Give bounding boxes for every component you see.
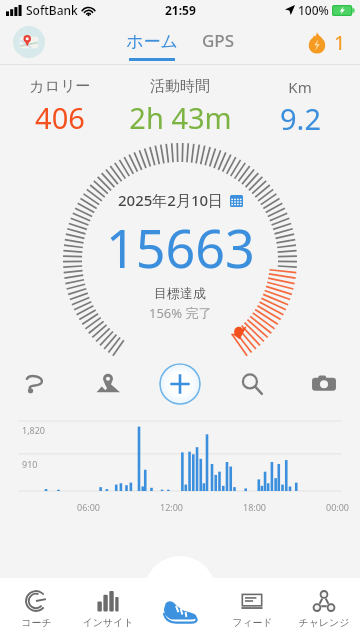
staticText: カロリー <box>29 77 91 96</box>
button[interactable]: インサイト <box>72 578 144 640</box>
staticText: フィード <box>232 616 273 629</box>
staticText: 910 <box>22 458 38 470</box>
staticText: 2h 43m <box>129 98 232 137</box>
staticText: 100% <box>298 2 329 18</box>
button[interactable]: ホーム <box>126 20 178 64</box>
staticText: GPS <box>202 29 235 52</box>
button[interactable]: Map profile <box>13 26 45 58</box>
button[interactable] <box>0 556 360 578</box>
button[interactable]: チャレンジ <box>288 578 360 640</box>
staticText: インサイト <box>82 616 134 629</box>
button[interactable]: Add activity <box>144 357 216 411</box>
staticText: 9.2 <box>280 99 321 138</box>
staticText: 406 <box>35 98 85 137</box>
staticText: チャレンジ <box>298 616 350 629</box>
button[interactable]: 1 <box>306 29 346 56</box>
staticText: Km <box>288 77 312 97</box>
staticText: 15663 <box>106 212 255 283</box>
button[interactable]: Route <box>0 357 72 411</box>
button[interactable]: コーチ <box>0 578 72 640</box>
button[interactable]: Search <box>216 357 288 411</box>
staticText: コーチ <box>21 616 52 629</box>
button[interactable]: 1,820 <box>0 411 360 519</box>
button[interactable]: Km <box>240 77 360 138</box>
staticText: 21:59 <box>165 2 196 18</box>
button[interactable]: 活動時間 <box>120 77 240 137</box>
button[interactable]: フィード <box>216 578 288 640</box>
staticText: 156% 完了 <box>149 304 212 322</box>
staticText: 目標達成 <box>154 285 206 301</box>
staticText: ホーム <box>126 31 178 52</box>
staticText: 活動時間 <box>150 77 210 96</box>
button[interactable]: Activity <box>144 578 216 640</box>
staticText: 06:00 <box>77 501 101 513</box>
staticText: 1 <box>334 29 346 56</box>
button[interactable]: カロリー <box>0 77 120 137</box>
staticText: 2025年2月10日 <box>118 190 224 210</box>
button[interactable]: Camera <box>288 357 360 411</box>
staticText: SoftBank <box>26 2 78 18</box>
staticText: 00:00 <box>326 501 350 513</box>
button[interactable]: GPS <box>202 20 235 64</box>
button[interactable]: Places <box>72 357 144 411</box>
staticText: 18:00 <box>243 501 267 513</box>
staticText: 12:00 <box>160 501 184 513</box>
staticText: 1,820 <box>22 424 46 436</box>
